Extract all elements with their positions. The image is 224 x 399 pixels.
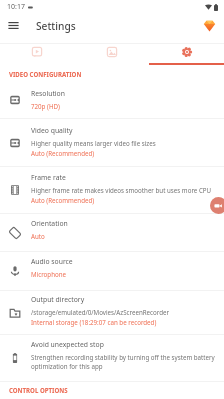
staticText: Video quality [31,126,73,135]
staticText: Internal storage (18:29:07 can be record… [31,318,157,326]
button[interactable]: Frame rate [0,167,224,213]
staticText: Avoid unexpected stop [31,340,104,349]
staticText: Audio source [31,257,73,266]
button[interactable]: Record [210,197,224,214]
staticText: Frame rate [31,173,66,182]
button[interactable]: Upgrade to premium [196,14,222,37]
staticText: Settings [36,19,76,33]
staticText: Microphone [31,270,67,278]
staticText: Orientation [31,219,68,228]
staticText: Higher quality means larger video file s… [31,139,156,147]
staticText: CONTROL OPTIONS [9,386,68,394]
button[interactable]: Output directory [0,291,224,334]
staticText: 10:17 [7,2,25,12]
button[interactable]: Videos [0,44,74,59]
staticText: Higher frame rate makes videos smoother … [31,186,212,194]
button[interactable]: Audio source [0,252,224,290]
staticText: VIDEO CONFIGURATION [9,70,82,78]
staticText: Auto (Recommended) [31,149,95,157]
staticText: /storage/emulated/0/Movies/AzScreenRecor… [31,308,170,316]
button[interactable]: Avoid unexpected stop [0,335,224,381]
button[interactable]: Open navigation menu [0,14,26,37]
button[interactable]: Resolution [0,78,224,118]
button[interactable]: Orientation [0,214,224,251]
button[interactable]: Settings tab [149,44,224,59]
button[interactable]: Images [74,44,149,59]
staticText: Resolution [31,89,65,98]
staticText: Output directory [31,295,85,304]
staticText: Strengthen recording stability by turnin… [31,353,219,371]
button[interactable]: Video quality [0,119,224,166]
staticText: Auto [31,232,45,240]
staticText: 720p (HD) [31,102,60,110]
staticText: Auto (Recommended) [31,196,95,204]
